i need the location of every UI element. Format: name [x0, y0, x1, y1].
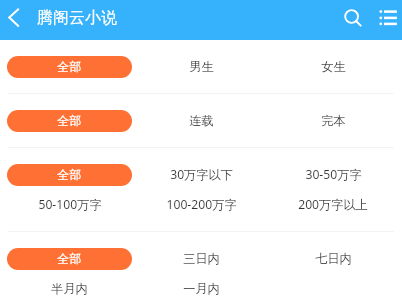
button[interactable]: 200万字以上: [267, 194, 399, 216]
staticText: 30-50万字: [305, 166, 362, 183]
button[interactable]: 女生: [267, 56, 399, 78]
staticText: 完本: [321, 113, 346, 128]
button[interactable]: 完本: [267, 110, 399, 132]
button[interactable]: 全部: [7, 56, 132, 78]
staticText: 全部: [57, 167, 82, 182]
button[interactable]: 全部: [7, 110, 132, 132]
button[interactable]: 半月内: [4, 278, 135, 300]
staticText: 30万字以下: [170, 166, 233, 183]
staticText: 200万字以上: [298, 196, 368, 213]
staticText: 100-200万字: [166, 196, 237, 213]
button[interactable]: 一月内: [135, 278, 267, 300]
button[interactable]: 连载: [135, 110, 267, 132]
staticText: 全部: [57, 113, 82, 128]
button[interactable]: Search: [337, 3, 367, 33]
button[interactable]: Back: [0, 4, 28, 32]
button[interactable]: 30-50万字: [267, 164, 399, 186]
button[interactable]: 七日内: [267, 248, 399, 270]
staticText: 全部: [57, 251, 82, 266]
button[interactable]: 全部: [7, 248, 132, 270]
staticText: 一月内: [183, 281, 220, 296]
staticText: 男生: [189, 59, 214, 74]
button[interactable]: 男生: [135, 56, 267, 78]
button[interactable]: Categories: [374, 3, 402, 31]
staticText: 腾阁云小说: [37, 8, 117, 28]
staticText: 50-100万字: [38, 196, 102, 213]
button[interactable]: 三日内: [135, 248, 267, 270]
staticText: 连载: [189, 113, 214, 128]
button[interactable]: 100-200万字: [135, 194, 267, 216]
button[interactable]: 30万字以下: [135, 164, 267, 186]
staticText: 半月内: [51, 281, 88, 296]
button[interactable]: 50-100万字: [4, 194, 135, 216]
staticText: 全部: [57, 59, 82, 74]
staticText: 七日内: [315, 251, 352, 266]
button[interactable]: 全部: [7, 164, 132, 186]
staticText: 女生: [321, 59, 346, 74]
staticText: 三日内: [183, 251, 220, 266]
